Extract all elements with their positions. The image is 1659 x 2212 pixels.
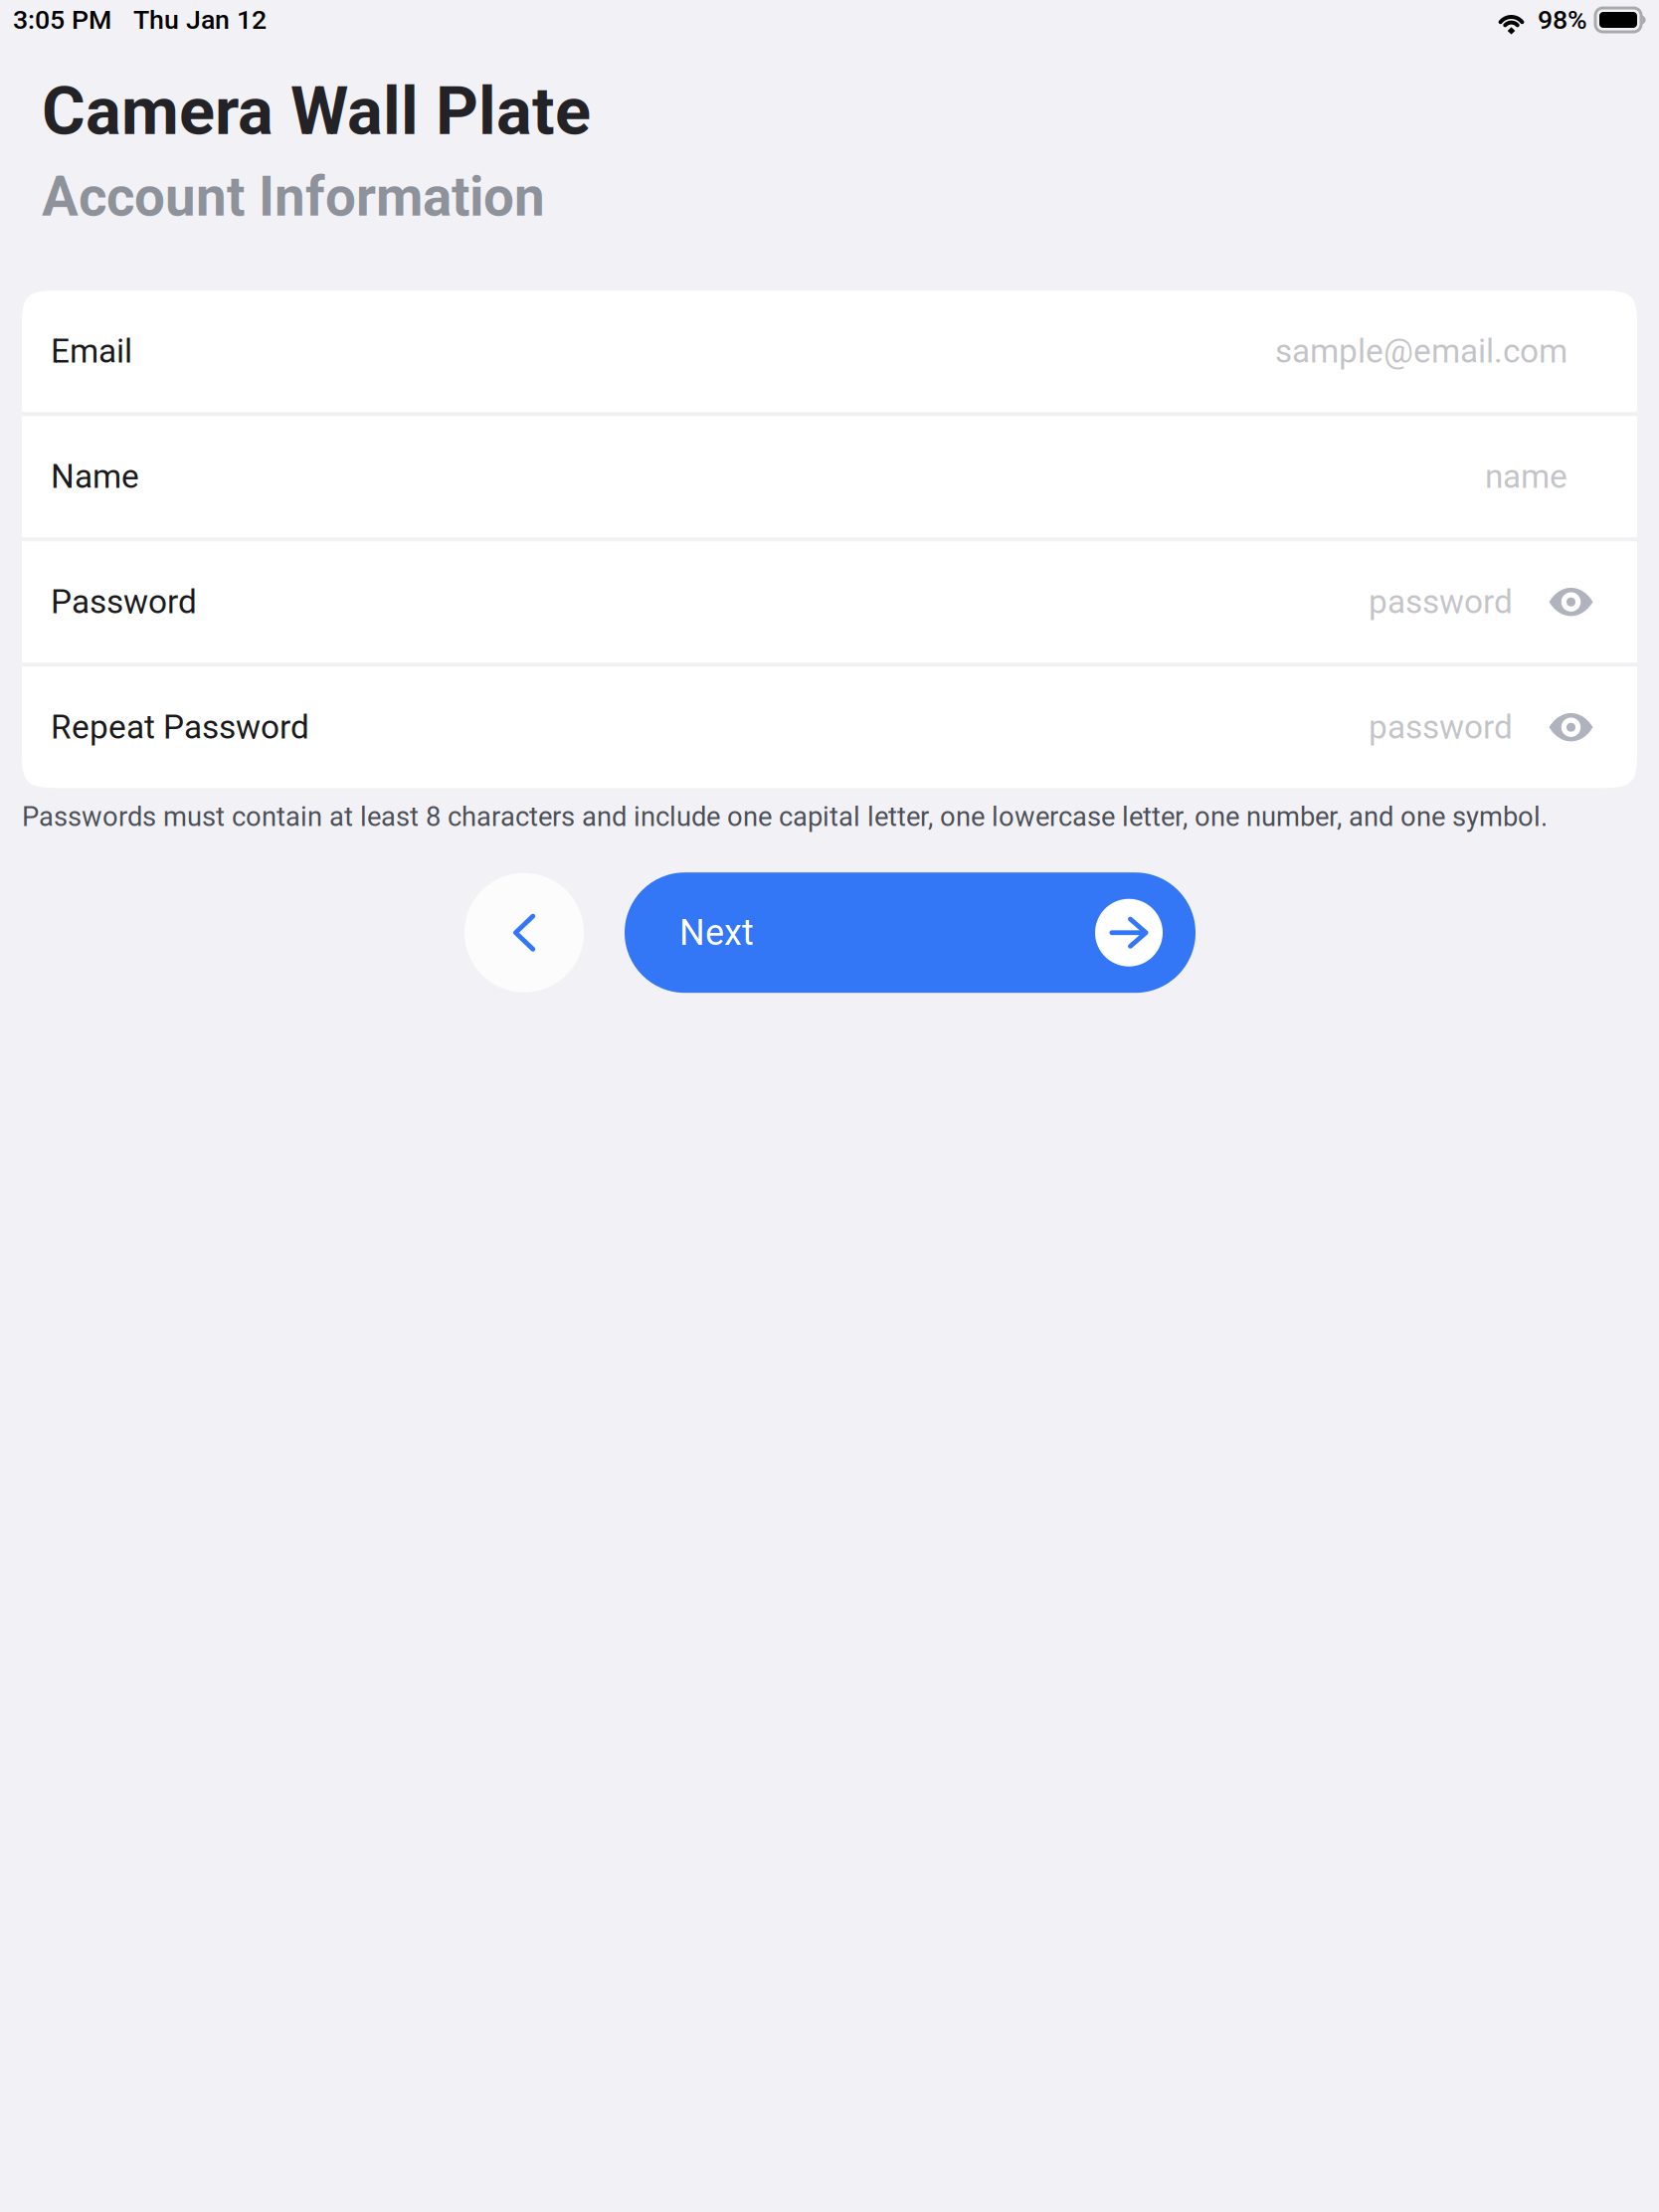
staticText: sample@email.com <box>1275 332 1567 371</box>
staticText: 98% <box>1538 4 1587 36</box>
button[interactable]: Name <box>22 416 1567 537</box>
staticText: Thu Jan 12 <box>133 4 267 36</box>
staticText: name <box>1485 457 1567 496</box>
staticText: password <box>1369 583 1513 621</box>
staticText: 3:05 PM <box>13 4 111 36</box>
staticText: Camera Wall Plate <box>42 73 591 150</box>
staticText: Repeat Password <box>51 708 309 747</box>
staticText: password <box>1369 708 1513 747</box>
staticText: Email <box>51 332 132 371</box>
staticText: Name <box>51 457 139 496</box>
button[interactable]: Next <box>625 872 1196 993</box>
staticText: Account Information <box>42 165 545 229</box>
button[interactable]: Show password <box>1513 541 1637 663</box>
button[interactable]: Email <box>22 291 1567 412</box>
button[interactable]: Show password <box>1513 667 1637 788</box>
button[interactable]: Password <box>22 541 1513 663</box>
button[interactable]: Repeat Password <box>22 667 1513 788</box>
staticText: Password <box>51 583 197 621</box>
staticText: Passwords must contain at least 8 charac… <box>22 801 1548 833</box>
staticText: Next <box>679 912 754 954</box>
button[interactable]: Back <box>464 872 584 993</box>
